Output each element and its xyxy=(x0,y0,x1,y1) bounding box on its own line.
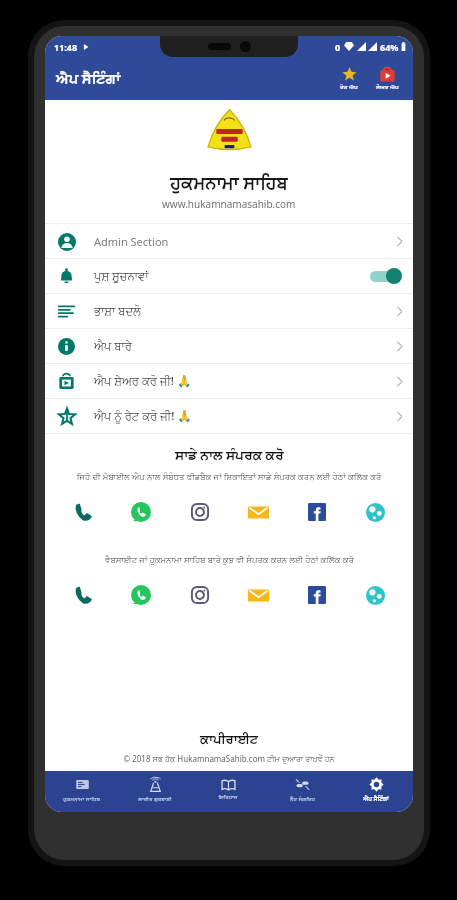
staticText: ਹੁਕਮਨਾਮਾ ਸਾਹਿਬ xyxy=(170,171,288,194)
button[interactable]: Email xyxy=(244,581,272,609)
button[interactable]: Share app xyxy=(371,67,404,90)
staticText: ਐਪ ਬਾਰੇ xyxy=(94,338,397,354)
staticText: © 2018 ਸਭ ਹੱਕ HukamnamaSahib.com ਟੀਮ ਦੁਆ… xyxy=(123,753,335,764)
staticText: ਜਿਹੋ ਦੀ ਮੋਬਾਈਲ ਐਪ ਨਾਲ ਸੰਬੰਧਤ ਫੀਡਬੈਕ ਜਾਂ … xyxy=(58,471,400,483)
button[interactable]: Website xyxy=(361,581,389,609)
staticText: ਨੈੱਟ ਸੰਗਰਿਹ xyxy=(290,795,315,803)
button[interactable]: ਐਪ ਸੈਟਿੰਗਾਂ xyxy=(339,771,413,812)
button[interactable]: ਐਪ ਨੂੰ ਰੇਟ ਕਰੋ ਜੀ! 🙏 xyxy=(45,399,413,433)
button[interactable]: WhatsApp xyxy=(127,581,155,609)
staticText: 0 xyxy=(335,41,341,53)
staticText: ਐਪ ਸੈਟਿੰਗਾਂ xyxy=(56,69,121,88)
button[interactable]: Email xyxy=(244,498,272,526)
button[interactable]: ਲਾਈਵ ਗੁਰਬਾਣੀ xyxy=(118,771,191,812)
button[interactable]: ਐਪ ਸ਼ੇਅਰ ਕਰੋ ਜੀ! 🙏 xyxy=(45,364,413,398)
staticText: Admin Section xyxy=(94,234,397,249)
staticText: ਸੇਅਰ ਐਪ xyxy=(376,83,399,90)
staticText: ਐਪ ਨੂੰ ਰੇਟ ਕਰੋ ਜੀ! 🙏 xyxy=(94,408,397,424)
staticText: ਹੁਕਮਨਾਮਾ ਸਾਹਿਬ xyxy=(63,795,100,803)
staticText: ਭਾਸ਼ਾ ਬਦਲੋ xyxy=(94,303,397,319)
button[interactable]: Facebook xyxy=(303,581,331,609)
button[interactable]: ਨੈੱਟ ਸੰਗਰਿਹ xyxy=(265,771,339,812)
staticText: ਸਾਡੇ ਨਾਲ ਸੰਪਰਕ ਕਰੋ xyxy=(175,446,284,464)
button[interactable]: ਹੁਕਮਨਾਮਾ ਸਾਹਿਬ xyxy=(45,771,118,812)
button[interactable]: Call xyxy=(69,498,97,526)
button[interactable]: ਪੁਸ਼ ਸੂਚਨਾਵਾਂ xyxy=(45,259,413,293)
button[interactable]: Call xyxy=(69,581,97,609)
button[interactable]: ਐਪ ਬਾਰੇ xyxy=(45,329,413,363)
staticText: ਇਤਿਹਾਸ xyxy=(218,795,238,801)
staticText: 64% xyxy=(380,41,399,53)
button[interactable]: Instagram xyxy=(186,498,214,526)
staticText: ਐਪ ਸੈਟਿੰਗਾਂ xyxy=(363,795,389,803)
button[interactable]: Rate app xyxy=(335,67,363,90)
staticText: ਵੈਬਸਾਈਟ ਜਾਂ ਹੁਕਮਨਾਮਾ ਸਾਹਿਬ ਬਾਰੇ ਕੁਝ ਵੀ ਸ… xyxy=(53,554,406,566)
staticText: 11:48 xyxy=(54,41,78,53)
button[interactable]: ਇਤਿਹਾਸ xyxy=(191,771,265,812)
staticText: ਕਾਪੀਰਾਈਟ xyxy=(200,734,259,747)
button[interactable]: Admin Section xyxy=(45,224,413,258)
staticText: www.hukamnamasahib.com xyxy=(162,197,296,211)
button[interactable]: WhatsApp xyxy=(127,498,155,526)
button[interactable]: Facebook xyxy=(303,498,331,526)
button[interactable]: ਭਾਸ਼ਾ ਬਦਲੋ xyxy=(45,294,413,328)
staticText: ਪੁਸ਼ ਸੂਚਨਾਵਾਂ xyxy=(94,268,370,284)
staticText: ਐਪ ਸ਼ੇਅਰ ਕਰੋ ਜੀ! 🙏 xyxy=(94,373,397,389)
button[interactable]: Website xyxy=(361,498,389,526)
button[interactable]: Instagram xyxy=(186,581,214,609)
staticText: ਰੇਟ ਐਪ xyxy=(340,83,358,90)
staticText: ਲਾਈਵ ਗੁਰਬਾਣੀ xyxy=(138,795,172,803)
